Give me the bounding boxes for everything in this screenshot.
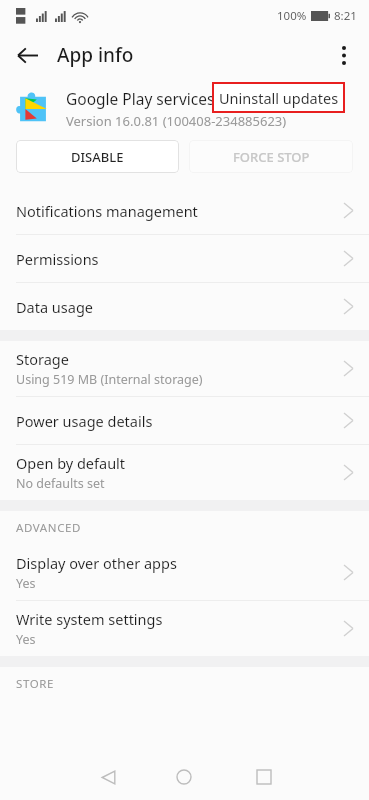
staticText: Notifications management (16, 201, 198, 221)
staticText: Permissions (16, 249, 99, 269)
staticText: Yes (16, 631, 36, 648)
button[interactable]: Back (88, 757, 128, 797)
staticText: Yes (16, 575, 36, 592)
staticText: DISABLE (71, 148, 124, 166)
staticText: 100% (277, 8, 307, 24)
button[interactable]: Uninstall updates (212, 82, 345, 113)
staticText: Using 519 MB (Internal storage) (16, 371, 203, 388)
staticText: Uninstall updates (219, 88, 339, 108)
staticText: STORE (16, 676, 55, 692)
button[interactable]: Back (8, 36, 46, 74)
staticText: ADVANCED (16, 520, 82, 536)
button[interactable]: Permissions (0, 235, 369, 282)
button[interactable]: Notifications management (0, 187, 369, 234)
button[interactable]: Open by default (0, 445, 369, 500)
button[interactable]: Power usage details (0, 397, 369, 444)
staticText: Version 16.0.81 (100408-234885623) (66, 112, 287, 130)
staticText: 8:21 (334, 8, 357, 24)
staticText: App info (57, 42, 134, 68)
staticText: Data usage (16, 297, 93, 317)
staticText: Storage (16, 349, 69, 369)
button[interactable]: DISABLE (16, 140, 179, 173)
button[interactable]: Storage (0, 341, 369, 396)
button[interactable]: Data usage (0, 283, 369, 330)
button[interactable]: Home (164, 757, 204, 797)
button[interactable]: Display over other apps (0, 545, 369, 600)
staticText: Open by default (16, 453, 126, 473)
button[interactable]: More options (325, 36, 363, 74)
staticText: Google Play services (66, 88, 215, 109)
staticText: Display over other apps (16, 553, 177, 573)
staticText: FORCE STOP (233, 148, 310, 166)
staticText: No defaults set (16, 475, 105, 492)
staticText: Power usage details (16, 411, 153, 431)
button[interactable]: FORCE STOP (189, 140, 353, 173)
button[interactable]: Write system settings (0, 601, 369, 656)
button[interactable]: Recent apps (244, 757, 284, 797)
staticText: Write system settings (16, 609, 163, 629)
